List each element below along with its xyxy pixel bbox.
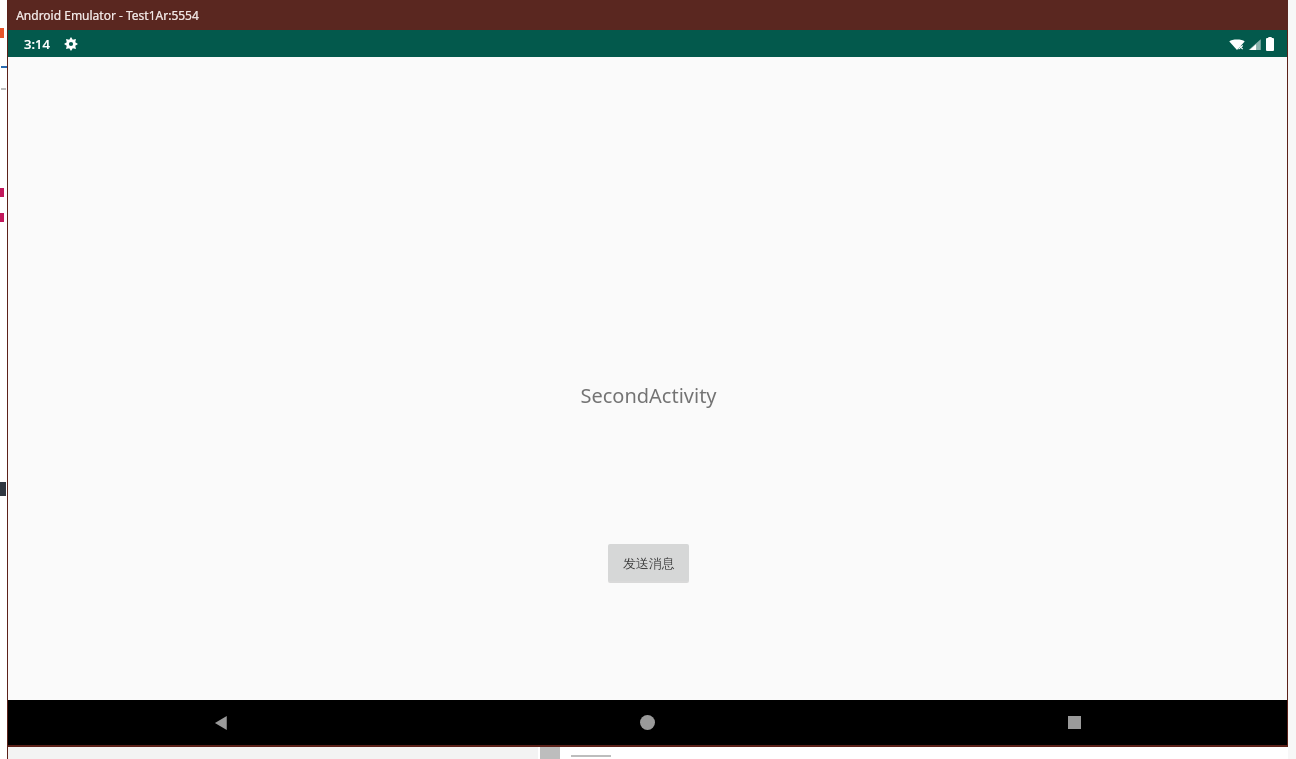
- button[interactable]: Home: [434, 700, 861, 745]
- staticText: SecondActivity: [580, 382, 717, 409]
- button[interactable]: Recent apps: [861, 700, 1288, 745]
- button[interactable]: 发送消息: [608, 544, 689, 581]
- button[interactable]: Back: [8, 700, 434, 745]
- staticText: Android Emulator - Test1Ar:5554: [16, 7, 199, 23]
- staticText: 3:14: [24, 35, 50, 53]
- staticText: 发送消息: [623, 555, 675, 571]
